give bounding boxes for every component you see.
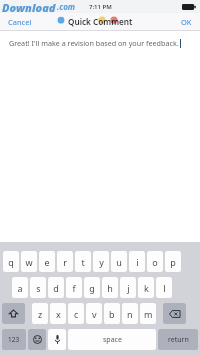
staticText: l xyxy=(163,282,166,294)
staticText: o xyxy=(152,256,158,268)
staticText: a xyxy=(17,282,23,294)
staticText: 7:11 PM xyxy=(89,3,112,11)
button[interactable]: p xyxy=(165,251,181,272)
button[interactable]: v xyxy=(86,303,102,324)
staticText: return xyxy=(168,335,189,345)
staticText: Download xyxy=(2,0,56,13)
staticText: Cancel xyxy=(8,17,32,27)
button[interactable]: o xyxy=(147,251,163,272)
button[interactable]: x xyxy=(50,303,66,324)
button[interactable]: u xyxy=(111,251,127,272)
staticText: p xyxy=(170,256,176,268)
staticText: u xyxy=(116,256,122,268)
button[interactable]: m xyxy=(140,303,156,324)
staticText: k xyxy=(144,282,149,294)
staticText: e xyxy=(44,256,50,268)
button[interactable]: f xyxy=(66,277,82,298)
button[interactable]: Emoji xyxy=(28,329,46,350)
staticText: space xyxy=(103,335,122,345)
staticText: 123 xyxy=(8,335,20,344)
staticText: y xyxy=(99,256,104,268)
staticText: m xyxy=(144,308,153,320)
staticText: .com xyxy=(57,1,76,12)
staticText: g xyxy=(89,282,95,294)
staticText: v xyxy=(92,308,97,320)
staticText: q xyxy=(8,256,14,268)
button[interactable]: y xyxy=(93,251,109,272)
button[interactable]: r xyxy=(57,251,73,272)
staticText: f xyxy=(72,282,76,294)
button[interactable]: Cancel xyxy=(0,14,40,30)
button[interactable]: Delete xyxy=(163,303,186,324)
button[interactable]: w xyxy=(21,251,37,272)
button[interactable]: return xyxy=(158,329,198,350)
button[interactable]: 123 xyxy=(2,329,26,350)
staticText: z xyxy=(38,308,43,320)
staticText: r xyxy=(63,256,67,268)
button[interactable]: q xyxy=(3,251,19,272)
staticText: b xyxy=(109,308,115,320)
button[interactable]: Dictate xyxy=(48,329,66,350)
button[interactable]: a xyxy=(12,277,28,298)
button[interactable]: Shift xyxy=(2,303,25,324)
button[interactable]: j xyxy=(120,277,136,298)
button[interactable]: i xyxy=(129,251,145,272)
button[interactable]: k xyxy=(138,277,154,298)
button[interactable]: OK xyxy=(173,14,200,30)
button[interactable]: l xyxy=(156,277,172,298)
button[interactable]: h xyxy=(102,277,118,298)
staticText: w xyxy=(25,256,33,268)
button[interactable]: e xyxy=(39,251,55,272)
button[interactable]: space xyxy=(68,329,156,350)
staticText: Great! I'll make a revision based on you… xyxy=(9,38,179,48)
button[interactable]: d xyxy=(48,277,64,298)
staticText: x xyxy=(56,308,61,320)
button[interactable]: Great! I'll make a revision based on you… xyxy=(0,31,200,242)
staticText: OK xyxy=(181,17,192,27)
staticText: s xyxy=(36,282,41,294)
button[interactable]: t xyxy=(75,251,91,272)
staticText: n xyxy=(127,308,133,320)
button[interactable]: c xyxy=(68,303,84,324)
button[interactable]: b xyxy=(104,303,120,324)
button[interactable]: z xyxy=(32,303,48,324)
staticText: d xyxy=(53,282,59,294)
staticText: j xyxy=(127,282,130,294)
staticText: h xyxy=(107,282,113,294)
staticText: i xyxy=(136,256,139,268)
staticText: Quick Comment xyxy=(68,16,133,27)
button[interactable]: n xyxy=(122,303,138,324)
button[interactable]: s xyxy=(30,277,46,298)
button[interactable]: g xyxy=(84,277,100,298)
staticText: t xyxy=(81,256,85,268)
staticText: c xyxy=(74,308,79,320)
